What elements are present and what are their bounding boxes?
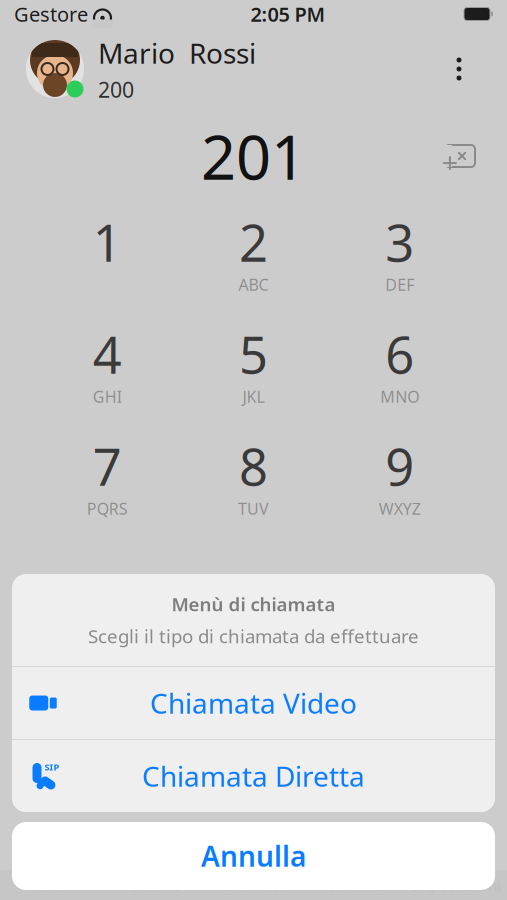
staticText: MNO [380,386,419,407]
staticText: Telefono [123,875,182,895]
staticText: 5 [239,320,268,388]
staticText: Menù di chiamata [171,592,335,616]
button[interactable]: 1 [34,202,180,298]
staticText: Mario Rossi [98,34,256,71]
staticText: Scegli il tipo di chiamata da effettuare [88,623,419,648]
staticText: 2 [239,208,268,276]
staticText: 7 [93,432,122,500]
button[interactable]: Impostazioni [406,875,507,895]
staticText: 1 [93,208,122,276]
button[interactable]: 4 [34,314,180,410]
staticText: Chiamate [221,875,286,895]
button[interactable]: 8 [180,426,327,522]
staticText: Chat [35,875,66,895]
staticText: SIP [44,761,59,773]
staticText: 9 [385,432,414,500]
staticText: Annulla [201,837,306,875]
staticText: Gestore [14,1,88,27]
staticText: 4 [93,320,122,388]
button[interactable]: Telefono [101,875,203,895]
staticText: 201 [201,115,306,197]
button[interactable]: 3 [327,202,473,298]
button[interactable]: Chiamata Video [12,667,495,739]
staticText: DEF [385,274,414,295]
button[interactable]: Chiamata Diretta [12,740,495,812]
staticText: 3 [385,208,414,276]
button[interactable]: 5 [180,314,327,410]
staticText: Chiamata Video [150,684,357,722]
button[interactable]: 7 [34,426,180,522]
staticText: PQRS [87,498,128,519]
staticText: ABC [238,274,268,295]
staticText: Contacts [325,875,384,895]
staticText: 200 [98,75,134,104]
staticText: 8 [239,432,268,500]
staticText: JKL [242,386,264,407]
button[interactable]: More options [437,47,481,91]
staticText: Impostazioni [411,875,501,895]
staticText: 6 [385,320,414,388]
button[interactable]: Delete [431,134,483,178]
button[interactable]: 6 [327,314,473,410]
button[interactable]: Contacts [304,875,406,895]
staticText: 2:05 PM [250,1,325,27]
staticText: Chiamata Diretta [142,757,365,795]
staticText: TUV [238,498,269,519]
button[interactable]: 2 [180,202,327,298]
button[interactable]: Chiamate [203,875,304,895]
button[interactable]: Chat [0,875,101,895]
staticText: WXYZ [379,498,421,519]
staticText: GHI [93,386,122,407]
button[interactable]: Annulla [12,822,495,890]
button[interactable]: 9 [327,426,473,522]
